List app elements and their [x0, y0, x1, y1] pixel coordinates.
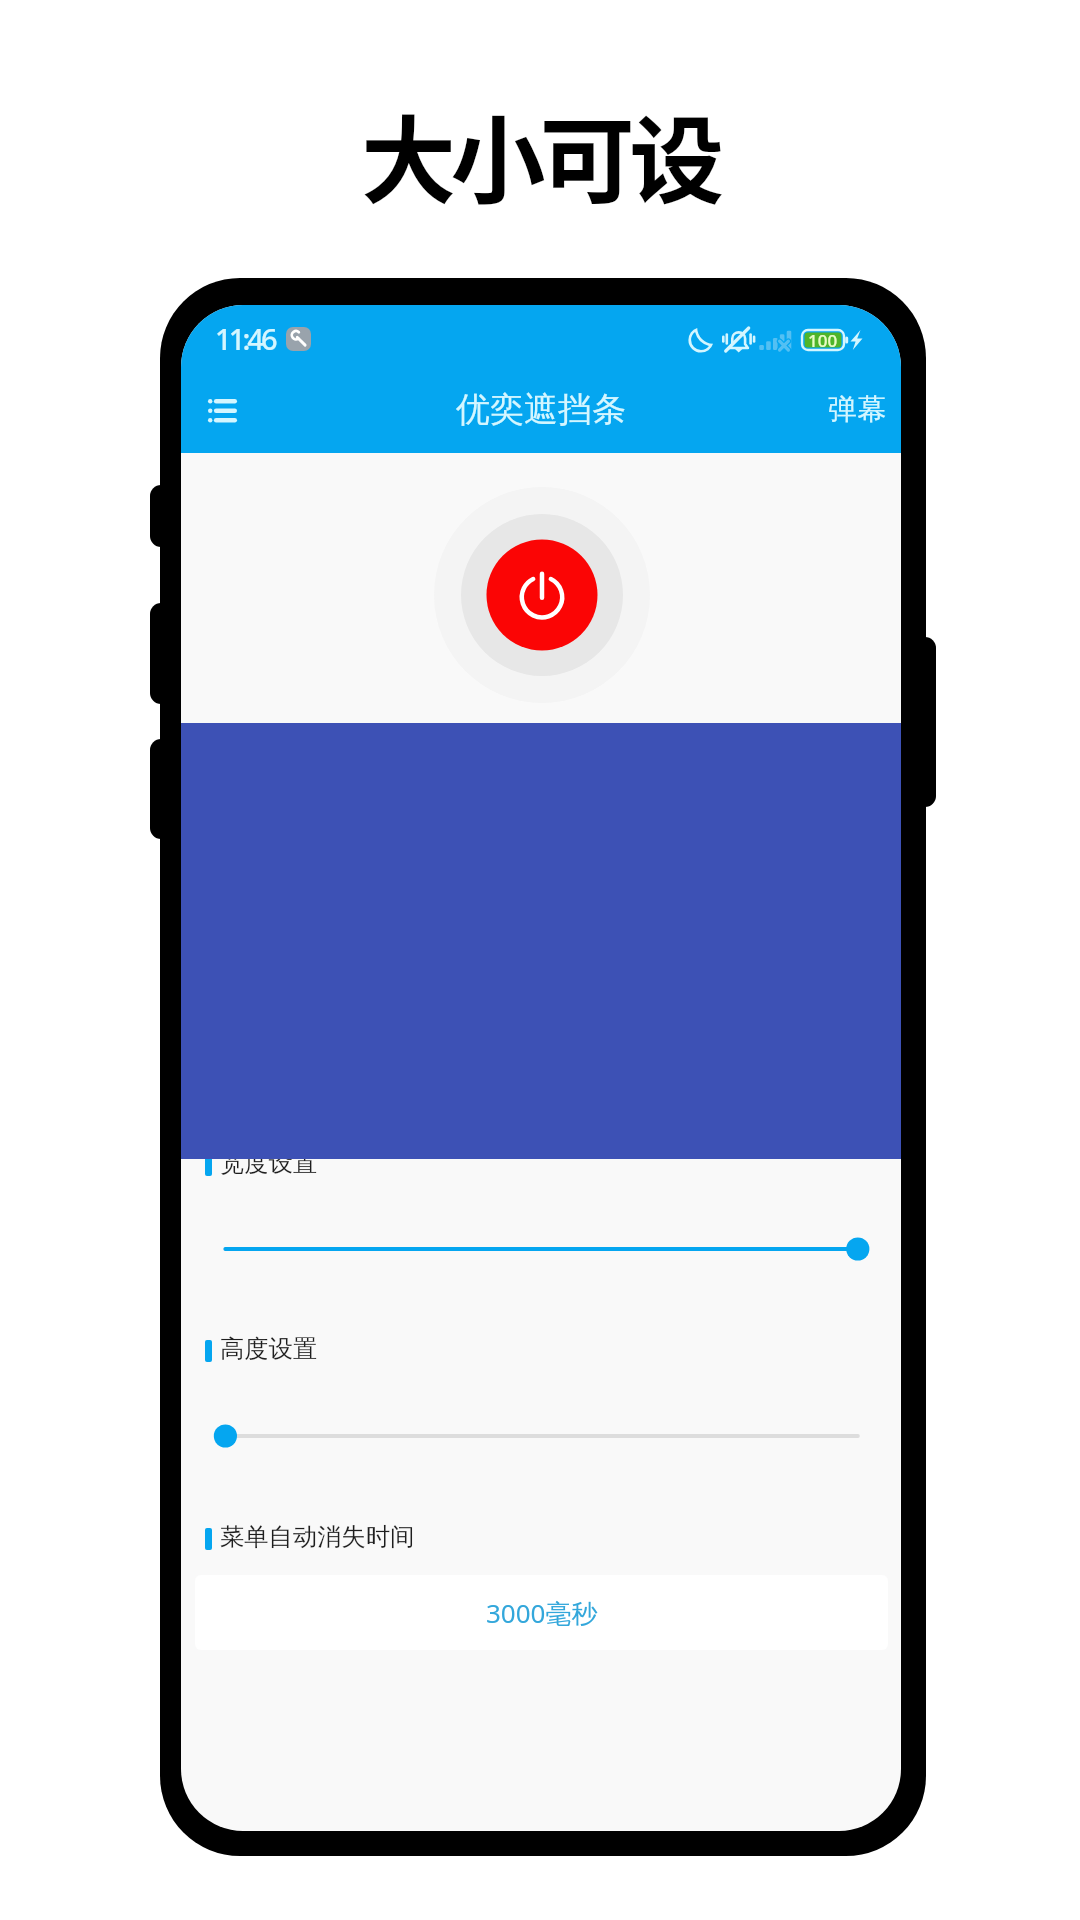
- staticText: 100: [808, 329, 838, 351]
- button[interactable]: Power toggle: [461, 514, 623, 676]
- button[interactable]: 弹幕: [813, 377, 901, 442]
- staticText: 11:46: [215, 319, 275, 358]
- staticText: 高度设置: [220, 1334, 318, 1365]
- staticText: 菜单自动消失时间: [220, 1522, 415, 1553]
- button[interactable]: 3000毫秒: [195, 1575, 888, 1650]
- staticText: 弹幕: [828, 391, 886, 428]
- staticText: 3000毫秒: [486, 1595, 598, 1631]
- staticText: 大小可设: [361, 86, 719, 224]
- staticText: 宽度设置: [220, 1148, 318, 1179]
- staticText: 优奕遮挡条: [456, 388, 626, 431]
- button[interactable]: Width slider: [181, 1233, 901, 1265]
- button[interactable]: Height slider: [181, 1420, 901, 1452]
- button[interactable]: Menu: [190, 381, 255, 440]
